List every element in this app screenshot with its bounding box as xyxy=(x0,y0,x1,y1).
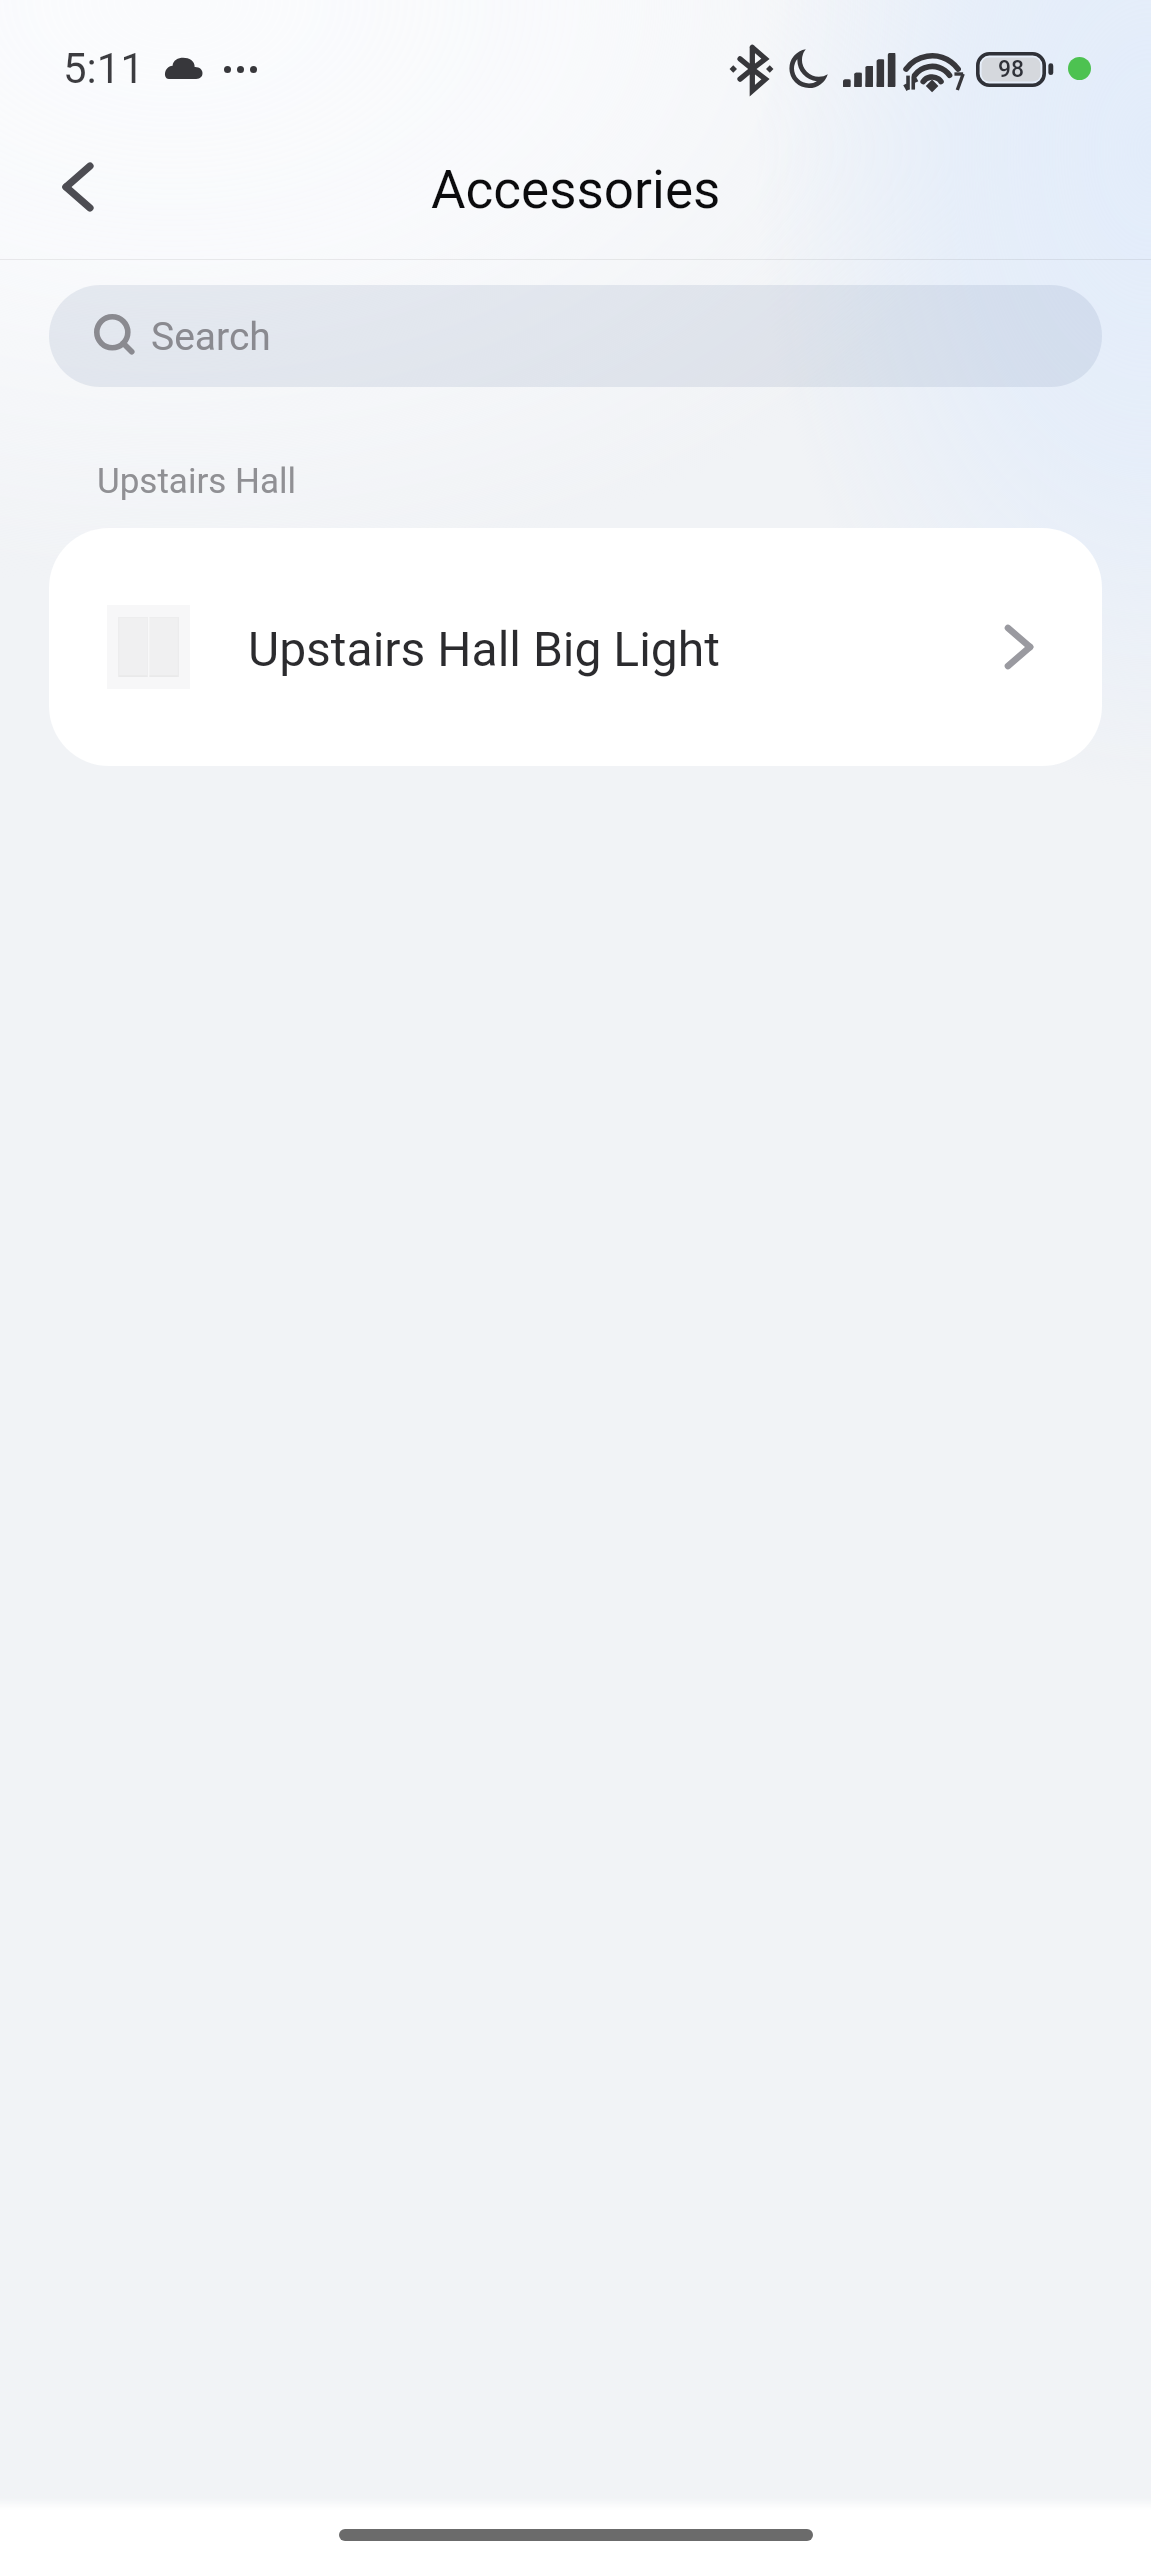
staticText: Upstairs Hall Big Light xyxy=(248,621,720,677)
staticText: Accessories xyxy=(431,159,721,221)
staticText: 98 xyxy=(998,56,1025,83)
button[interactable]: Search xyxy=(49,285,1102,387)
staticText: 5:11 xyxy=(63,44,144,93)
staticText: Search xyxy=(151,314,271,360)
button[interactable]: Upstairs Hall Big Light xyxy=(49,528,1102,766)
staticText: Upstairs Hall xyxy=(97,461,297,502)
button[interactable]: Back xyxy=(28,137,128,237)
